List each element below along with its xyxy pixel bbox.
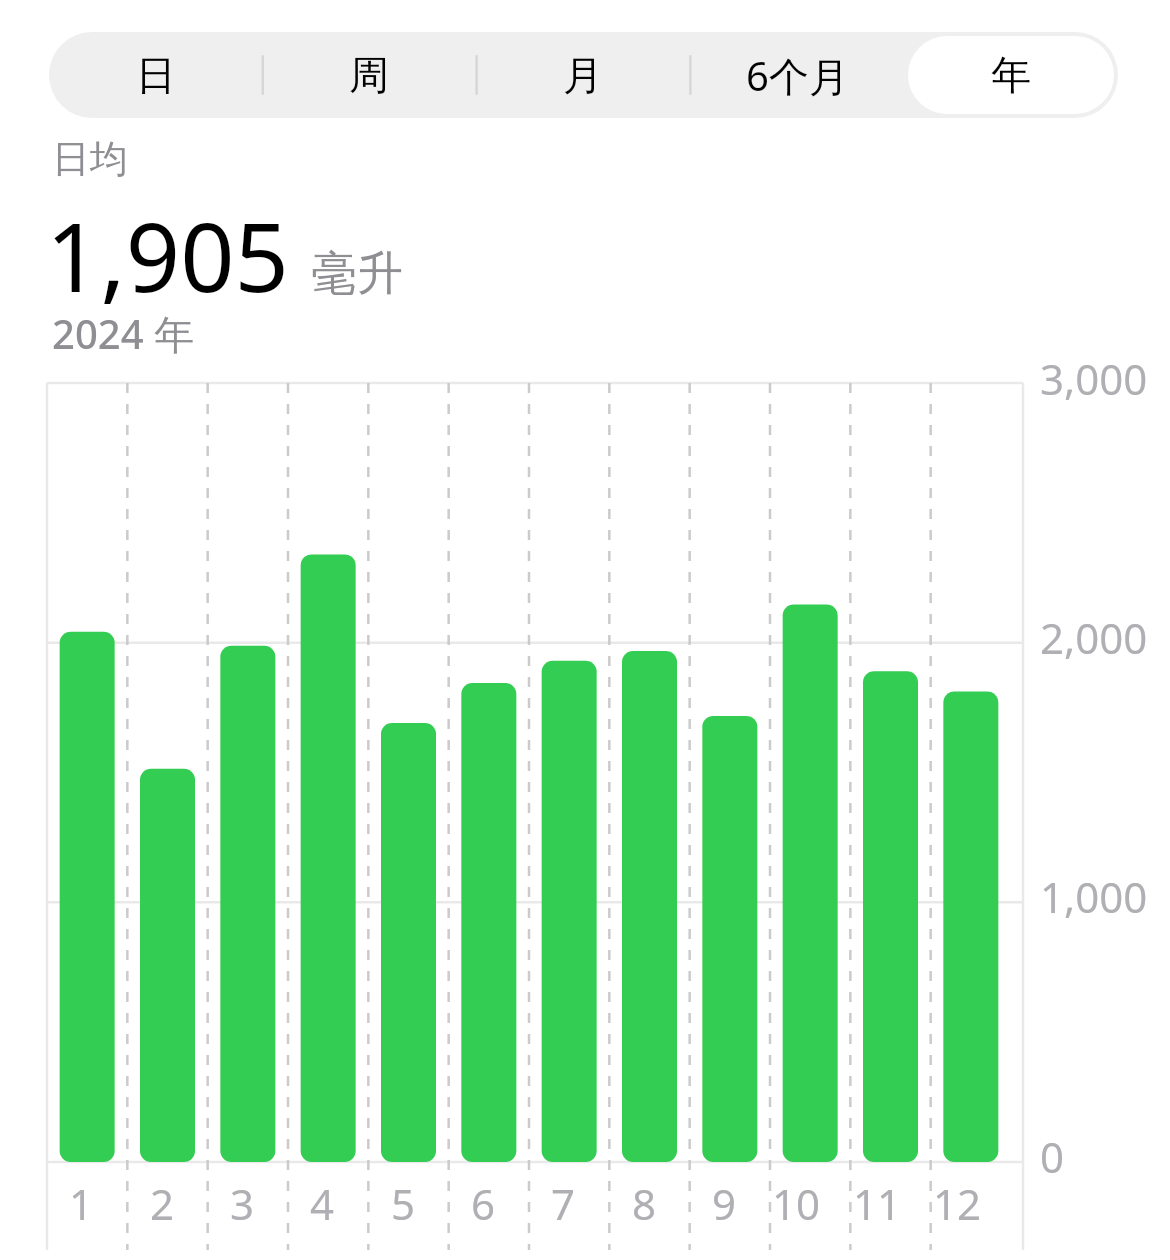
staticText: 11 [853, 1175, 902, 1232]
staticText: 2,000 [1040, 609, 1148, 666]
staticText: 2024 年 [52, 306, 194, 361]
staticText: 3,000 [1040, 350, 1148, 407]
staticText: 日 [136, 50, 176, 100]
staticText: 6个月 [746, 48, 849, 103]
staticText: 毫升 [311, 245, 403, 303]
button[interactable]: 日 [53, 36, 258, 114]
button[interactable]: 年 [908, 36, 1114, 114]
staticText: 年 [991, 50, 1031, 100]
staticText: 10 [772, 1175, 821, 1232]
staticText: 月 [563, 50, 603, 100]
staticText: 3 [230, 1175, 255, 1232]
button[interactable]: 周 [266, 36, 472, 114]
staticText: 4 [310, 1175, 335, 1232]
staticText: 1 [69, 1175, 94, 1232]
staticText: 9 [712, 1175, 737, 1232]
staticText: 1,905 [46, 190, 289, 319]
staticText: 6 [471, 1175, 496, 1232]
button[interactable]: 6个月 [694, 36, 900, 114]
staticText: 1,000 [1040, 868, 1148, 925]
staticText: 5 [391, 1175, 416, 1232]
button[interactable]: 月 [480, 36, 686, 114]
staticText: 0 [1040, 1128, 1065, 1185]
staticText: 8 [632, 1175, 657, 1232]
staticText: 日均 [52, 135, 128, 183]
staticText: 7 [551, 1175, 576, 1232]
staticText: 12 [933, 1175, 982, 1232]
staticText: 周 [349, 50, 389, 100]
staticText: 2 [150, 1175, 175, 1232]
